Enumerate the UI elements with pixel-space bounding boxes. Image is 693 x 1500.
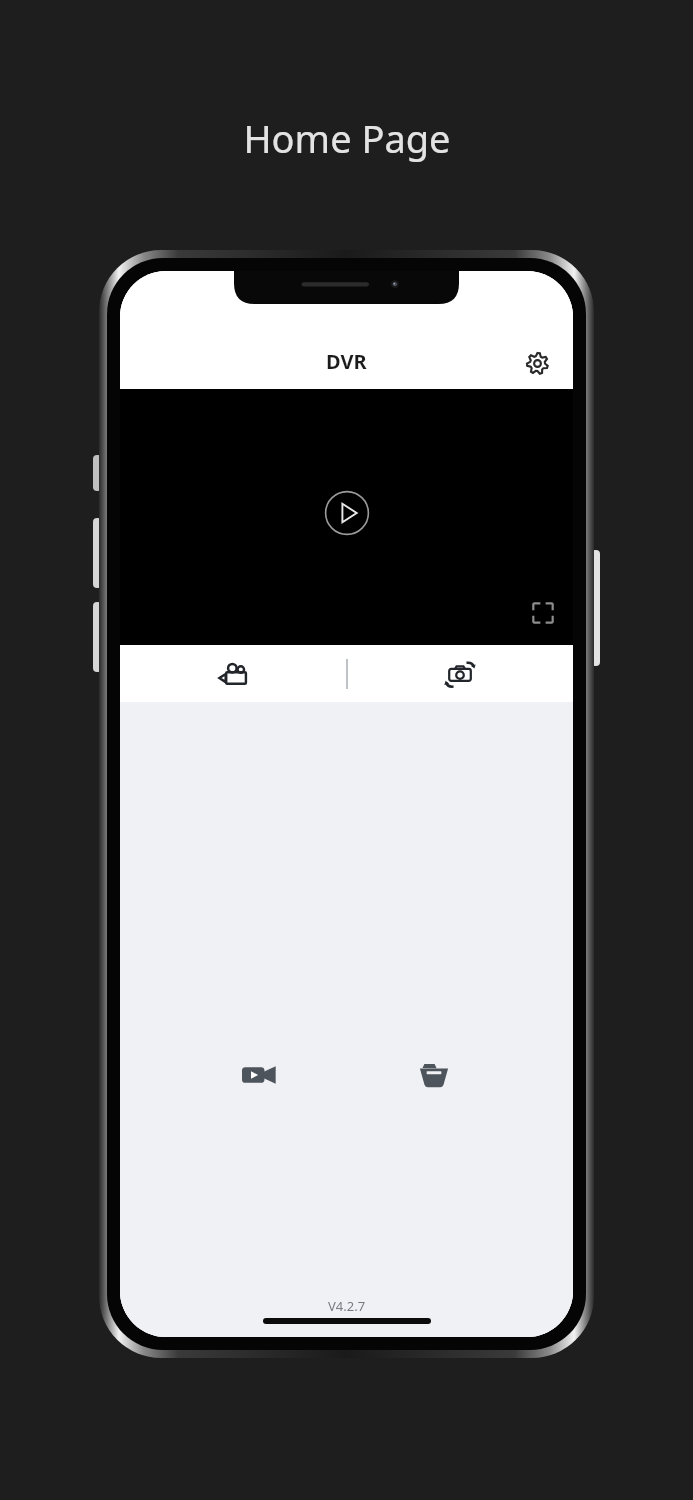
- staticText: DVR: [326, 348, 367, 375]
- staticText: Home Page: [243, 112, 451, 164]
- button[interactable]: Settings: [515, 341, 559, 385]
- button[interactable]: Files: [346, 1044, 521, 1106]
- staticText: V4.2.7: [328, 1297, 366, 1315]
- button[interactable]: Live video: [172, 1044, 346, 1106]
- button[interactable]: Record video: [120, 645, 346, 702]
- button[interactable]: Switch camera: [346, 645, 573, 702]
- button[interactable]: Fullscreen: [523, 593, 563, 633]
- button[interactable]: Play: [319, 485, 375, 541]
